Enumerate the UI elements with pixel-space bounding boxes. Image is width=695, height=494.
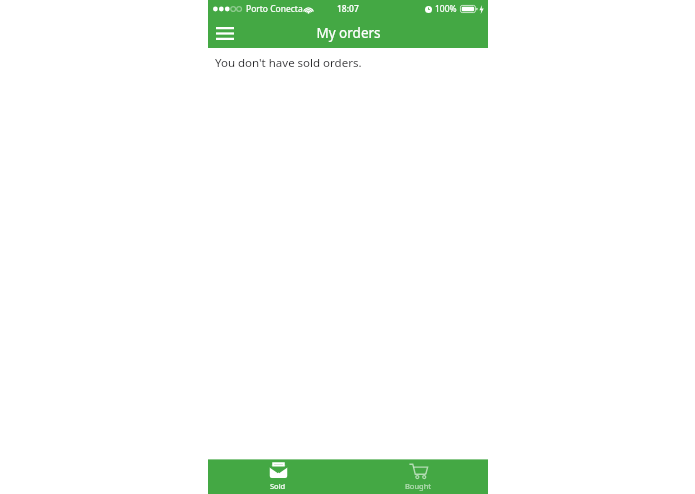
staticText: You don't have sold orders. bbox=[215, 55, 362, 71]
staticText: Bought bbox=[405, 481, 432, 491]
staticText: My orders bbox=[316, 24, 381, 42]
staticText: 18:07 bbox=[337, 3, 359, 15]
staticText: Sold bbox=[270, 481, 286, 491]
staticText: 100% bbox=[435, 3, 457, 15]
button[interactable]: Sold bbox=[208, 460, 348, 494]
staticText: Porto Conecta bbox=[246, 3, 303, 15]
button[interactable]: Bought bbox=[348, 460, 488, 494]
button[interactable]: Open navigation menu bbox=[211, 19, 239, 47]
